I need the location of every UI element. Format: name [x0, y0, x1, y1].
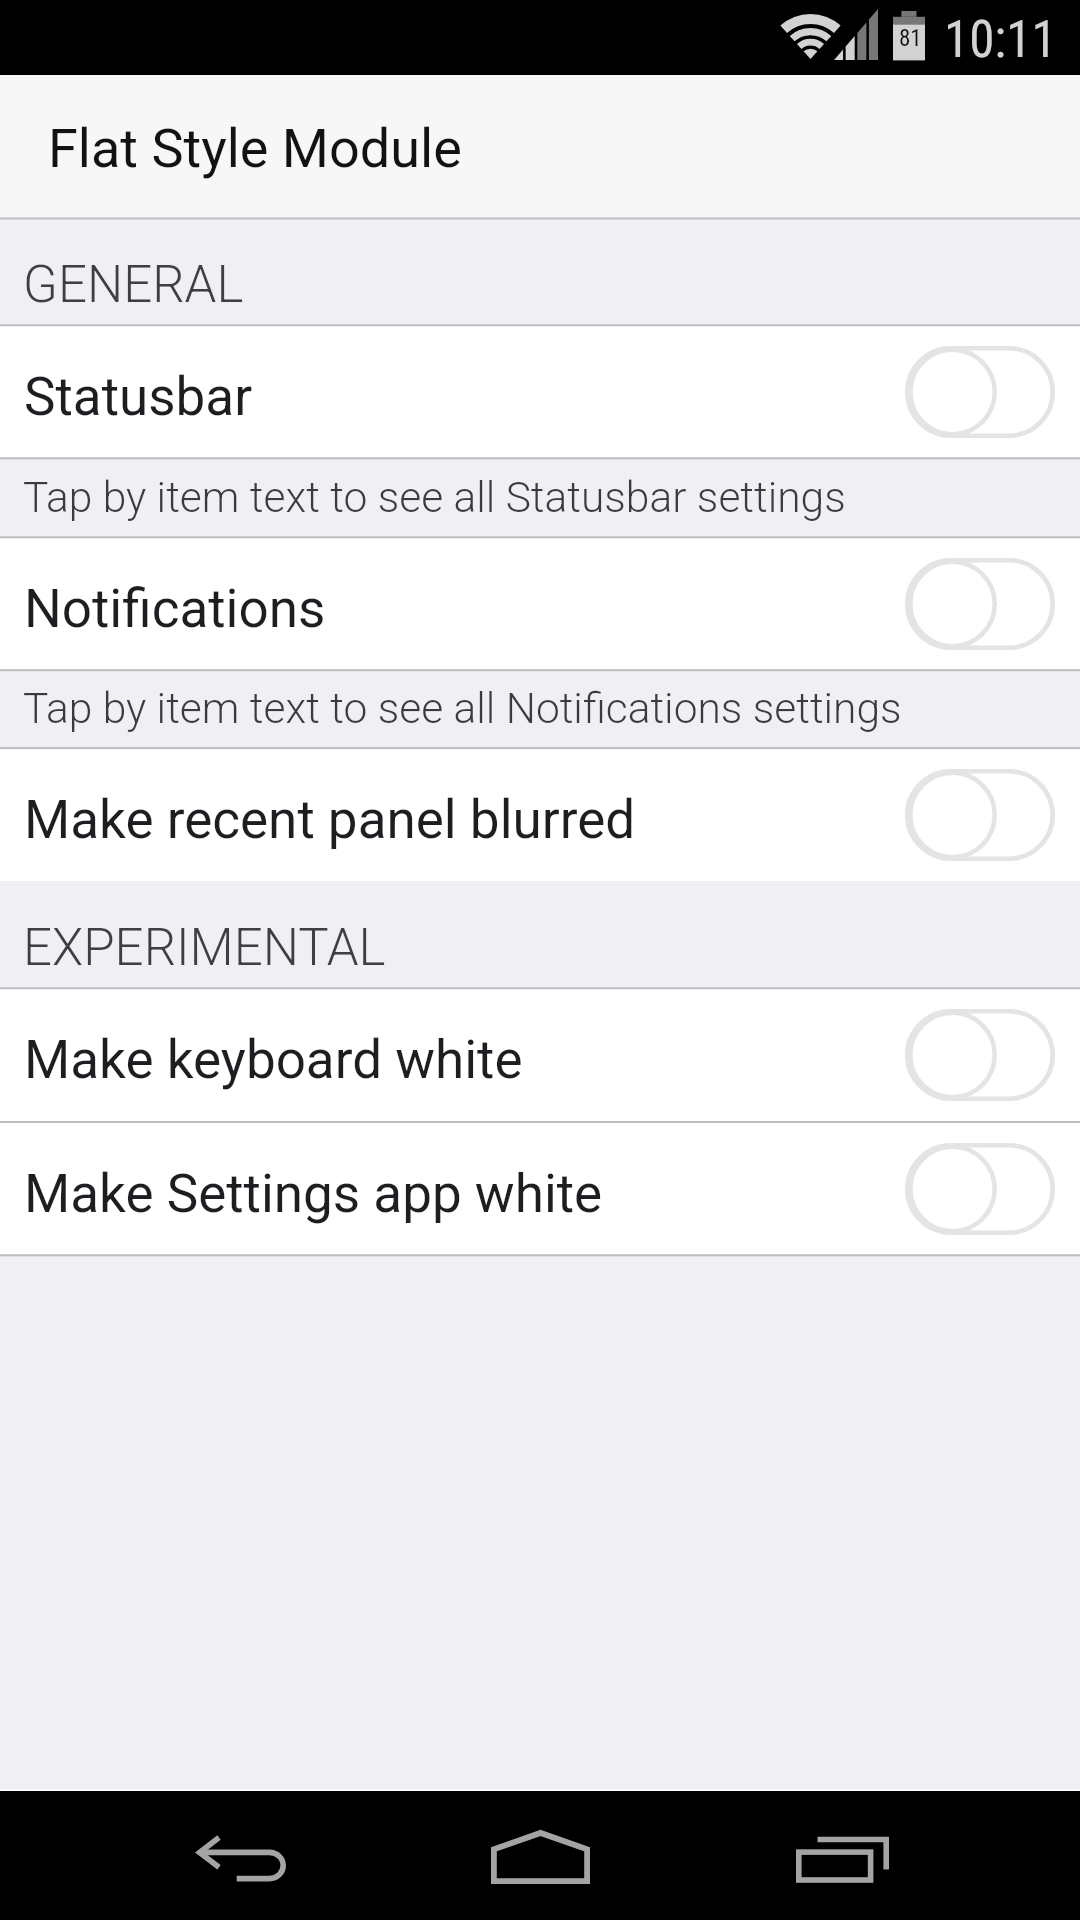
button[interactable]: Toggle Make Settings app white [905, 1143, 1055, 1235]
button[interactable]: Home [450, 1791, 630, 1920]
button[interactable]: Recent apps [753, 1791, 933, 1920]
staticText: Notifications [24, 578, 326, 640]
button[interactable]: Toggle Make recent panel blurred [905, 769, 1055, 861]
staticText: Statusbar [24, 366, 253, 428]
button[interactable]: Tap by item text to see all Statusbar se… [0, 458, 1080, 537]
button[interactable]: Back [150, 1791, 330, 1920]
staticText: EXPERIMENTAL [23, 918, 386, 978]
button[interactable]: Notifications [0, 537, 1080, 670]
staticText: GENERAL [23, 255, 244, 315]
button[interactable]: Make recent panel blurred [0, 748, 1080, 881]
button[interactable]: Toggle Notifications [905, 558, 1055, 650]
staticText: 10:11 [944, 10, 1057, 70]
button[interactable]: Make Settings app white [0, 1122, 1080, 1255]
button[interactable]: Make keyboard white [0, 988, 1080, 1122]
staticText: Make recent panel blurred [24, 789, 636, 851]
button[interactable]: Toggle Make keyboard white [905, 1009, 1055, 1101]
button[interactable]: Statusbar [0, 325, 1080, 458]
staticText: Tap by item text to see all Notification… [23, 684, 902, 734]
staticText: Make Settings app white [24, 1163, 603, 1225]
staticText: Flat Style Module [48, 117, 462, 180]
staticText: Make keyboard white [24, 1029, 523, 1091]
staticText: Tap by item text to see all Statusbar se… [23, 473, 846, 523]
staticText: 81 [899, 25, 922, 52]
button[interactable]: Tap by item text to see all Notification… [0, 670, 1080, 748]
button[interactable]: Toggle Statusbar [905, 346, 1055, 438]
